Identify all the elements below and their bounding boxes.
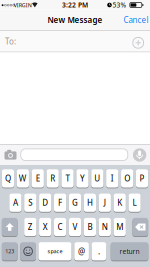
button[interactable]: space (38, 242, 71, 261)
button[interactable]: R (47, 169, 59, 188)
button[interactable]: Emoji (20, 242, 36, 261)
button[interactable]: T (61, 169, 74, 188)
staticText: Z (28, 222, 33, 232)
staticText: F (58, 197, 62, 208)
staticText: . (98, 246, 100, 257)
button[interactable]: Z (24, 217, 36, 237)
staticText: G (72, 197, 78, 208)
staticText: 123 (5, 248, 14, 255)
button[interactable]: return (111, 242, 148, 261)
staticText: Q (5, 173, 11, 184)
button[interactable]: Cancel (123, 15, 148, 25)
button[interactable]: J (99, 193, 111, 212)
button[interactable]: X (39, 217, 51, 237)
button[interactable]: K (114, 193, 126, 212)
button[interactable]: Y (76, 169, 89, 188)
staticText: VIRGIN (14, 2, 32, 9)
button[interactable]: O (121, 169, 133, 188)
button[interactable]: H (84, 193, 96, 212)
staticText: K (117, 197, 122, 208)
button[interactable]: B (84, 217, 96, 237)
button[interactable]: I (106, 169, 118, 188)
staticText: W (19, 173, 27, 184)
staticText: B (87, 222, 92, 232)
staticText: H (87, 197, 93, 208)
staticText: return (119, 247, 139, 256)
button[interactable]: Delete (132, 217, 148, 237)
button[interactable]: P (136, 169, 148, 188)
button[interactable]: G (69, 193, 81, 212)
button[interactable]: Add Contact (133, 37, 144, 48)
staticText: V (72, 222, 77, 232)
staticText: R (50, 173, 55, 184)
button[interactable]: Shift (2, 217, 17, 237)
button[interactable]: Attach Photo (4, 151, 16, 160)
button[interactable]: . (92, 242, 106, 261)
staticText: 53% (112, 1, 126, 9)
button[interactable]: U (91, 169, 103, 188)
staticText: S (28, 197, 32, 208)
button[interactable]: Q (2, 169, 14, 188)
staticText: U (94, 173, 100, 184)
button[interactable]: C (54, 217, 66, 237)
staticText: M (116, 222, 123, 232)
staticText: Y (80, 173, 85, 184)
staticText: New Message (47, 15, 102, 25)
button[interactable]: F (54, 193, 66, 212)
button[interactable]: M (114, 217, 126, 237)
button[interactable]: 123 (2, 242, 17, 261)
staticText: space (47, 248, 62, 255)
staticText: 3:22 PM (62, 1, 88, 9)
staticText: O (124, 173, 130, 184)
staticText: X (43, 222, 48, 232)
button[interactable]: D (39, 193, 51, 212)
staticText: Cancel (123, 15, 148, 25)
staticText: E (36, 173, 40, 184)
staticText: To: (5, 36, 16, 47)
staticText: J (104, 197, 106, 208)
button[interactable]: N (99, 217, 111, 237)
staticText: A (13, 197, 18, 208)
staticText: P (139, 173, 144, 184)
button[interactable]: W (17, 169, 29, 188)
button[interactable]: L (128, 193, 141, 212)
staticText: N (102, 222, 108, 232)
staticText: L (133, 197, 137, 208)
button[interactable]: V (69, 217, 81, 237)
staticText: T (65, 173, 69, 184)
button[interactable]: @ (74, 242, 89, 261)
button[interactable]: Record Audio (133, 148, 146, 162)
staticText: @ (78, 246, 85, 257)
staticText: D (42, 197, 48, 208)
staticText: C (58, 222, 63, 232)
button[interactable]: E (32, 169, 44, 188)
staticText: I (111, 173, 114, 184)
button[interactable]: A (9, 193, 21, 212)
button[interactable]: S (24, 193, 36, 212)
